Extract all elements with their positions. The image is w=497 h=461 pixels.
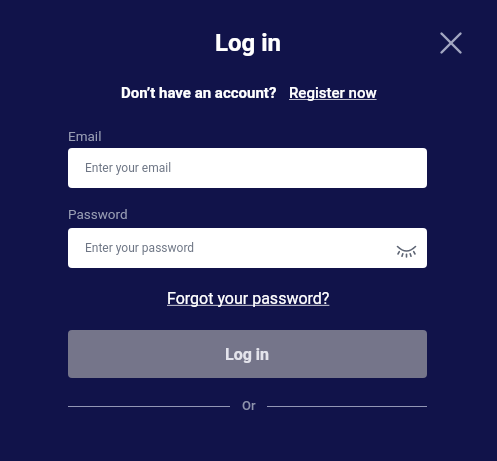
staticText: Or: [242, 398, 256, 413]
staticText: Email: [68, 128, 102, 144]
button[interactable]: Enter your password: [68, 228, 427, 268]
button[interactable]: Enter your email: [68, 148, 427, 188]
staticText: Enter your email: [85, 161, 172, 175]
button[interactable]: [433, 25, 469, 61]
staticText: Log in: [225, 345, 270, 364]
button[interactable]: Log in: [68, 330, 427, 378]
button[interactable]: Forgot your password?: [167, 289, 330, 308]
staticText: Enter your password: [85, 241, 195, 255]
staticText: Don’t have an account?: [121, 84, 277, 102]
staticText: Log in: [215, 29, 282, 57]
button[interactable]: Register now: [289, 84, 377, 102]
staticText: Password: [68, 206, 128, 222]
